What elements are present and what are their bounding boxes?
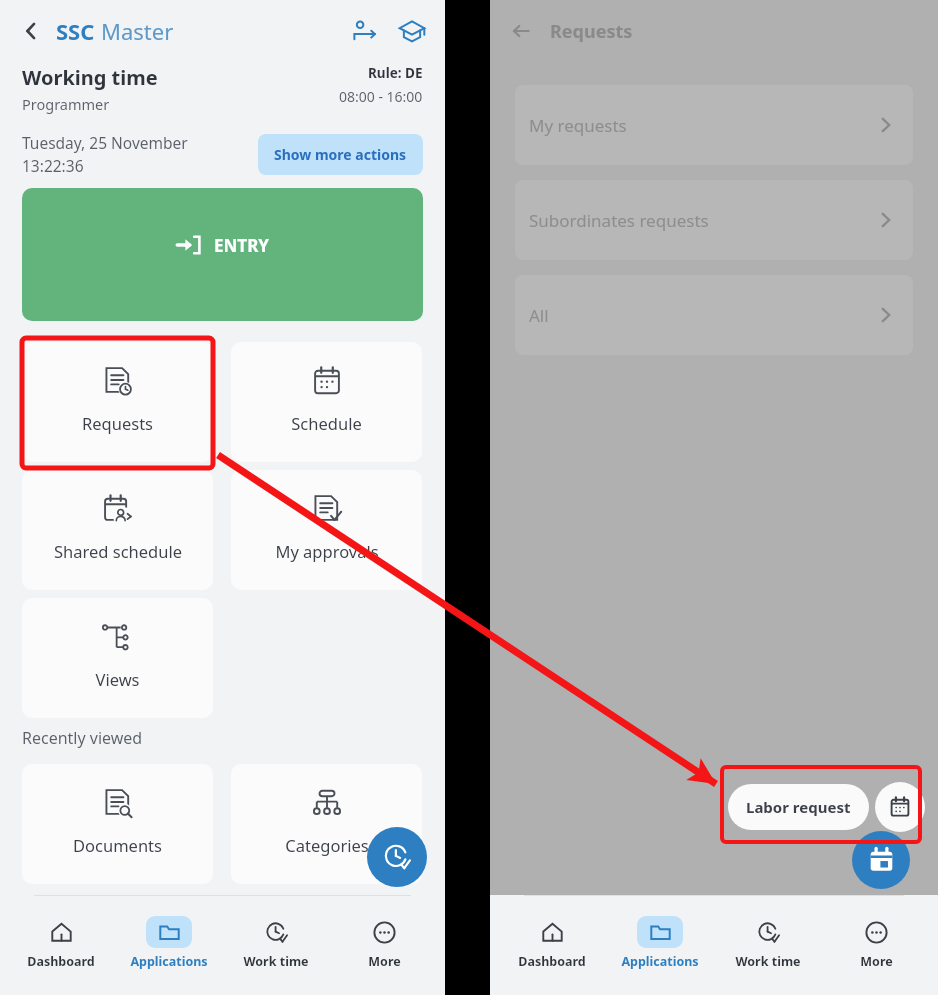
- button[interactable]: Back: [14, 14, 48, 48]
- staticText: Work time: [243, 953, 309, 970]
- staticText: Dashboard: [518, 953, 586, 970]
- staticText: Views: [95, 668, 140, 690]
- button[interactable]: Dashboard: [15, 912, 107, 974]
- staticText: Tuesday, 25 November: [22, 132, 188, 153]
- staticText: Categories: [285, 834, 369, 856]
- button[interactable]: Work time action: [367, 827, 427, 887]
- staticText: My requests: [529, 114, 627, 137]
- staticText: All: [529, 304, 549, 327]
- staticText: Requests: [82, 412, 153, 434]
- staticText: Work time: [735, 953, 801, 970]
- staticText: Applications: [621, 953, 699, 970]
- button[interactable]: Work time: [230, 912, 322, 974]
- button[interactable]: More: [338, 912, 430, 974]
- staticText: SSC: [56, 16, 95, 46]
- staticText: Rule: DE: [368, 64, 423, 82]
- staticText: Labor request: [746, 797, 851, 817]
- button[interactable]: My requests: [515, 85, 913, 165]
- button[interactable]: Work time: [722, 912, 814, 974]
- button[interactable]: Requests: [22, 342, 213, 462]
- button[interactable]: Shared schedule: [22, 470, 213, 590]
- button[interactable]: Applications: [123, 912, 215, 974]
- staticText: Shared schedule: [54, 540, 182, 562]
- staticText: Applications: [130, 953, 208, 970]
- button[interactable]: Subordinates requests: [515, 180, 913, 260]
- staticText: 13:22:36: [22, 155, 84, 176]
- button[interactable]: Labor request calendar: [875, 782, 925, 832]
- button[interactable]: My approvals: [231, 470, 422, 590]
- button[interactable]: Back: [504, 14, 538, 48]
- staticText: More: [860, 953, 893, 970]
- staticText: Dashboard: [27, 953, 95, 970]
- staticText: Requests: [550, 19, 633, 44]
- staticText: Schedule: [291, 412, 362, 434]
- staticText: Master: [101, 16, 174, 46]
- staticText: Recently viewed: [22, 727, 143, 749]
- staticText: Working time: [22, 64, 158, 91]
- staticText: 08:00 - 16:00: [339, 87, 423, 106]
- button[interactable]: ENTRY: [22, 188, 423, 321]
- staticText: ENTRY: [214, 234, 269, 257]
- button[interactable]: Labor request: [728, 784, 869, 830]
- staticText: Show more actions: [274, 145, 407, 164]
- button[interactable]: More: [830, 912, 922, 974]
- staticText: Subordinates requests: [529, 209, 709, 232]
- staticText: Documents: [73, 834, 162, 856]
- staticText: More: [368, 953, 401, 970]
- button[interactable]: Dashboard: [506, 912, 598, 974]
- staticText: My approvals: [275, 540, 379, 562]
- button[interactable]: Categories: [231, 764, 422, 884]
- button[interactable]: Add request: [852, 831, 910, 889]
- button[interactable]: Schedule: [231, 342, 422, 462]
- button[interactable]: Show more actions: [258, 134, 423, 175]
- staticText: Programmer: [22, 94, 110, 114]
- button[interactable]: Documents: [22, 764, 213, 884]
- button[interactable]: Views: [22, 598, 213, 718]
- button[interactable]: Applications: [614, 912, 706, 974]
- button[interactable]: Training: [393, 12, 431, 50]
- button[interactable]: Log out: [345, 12, 383, 50]
